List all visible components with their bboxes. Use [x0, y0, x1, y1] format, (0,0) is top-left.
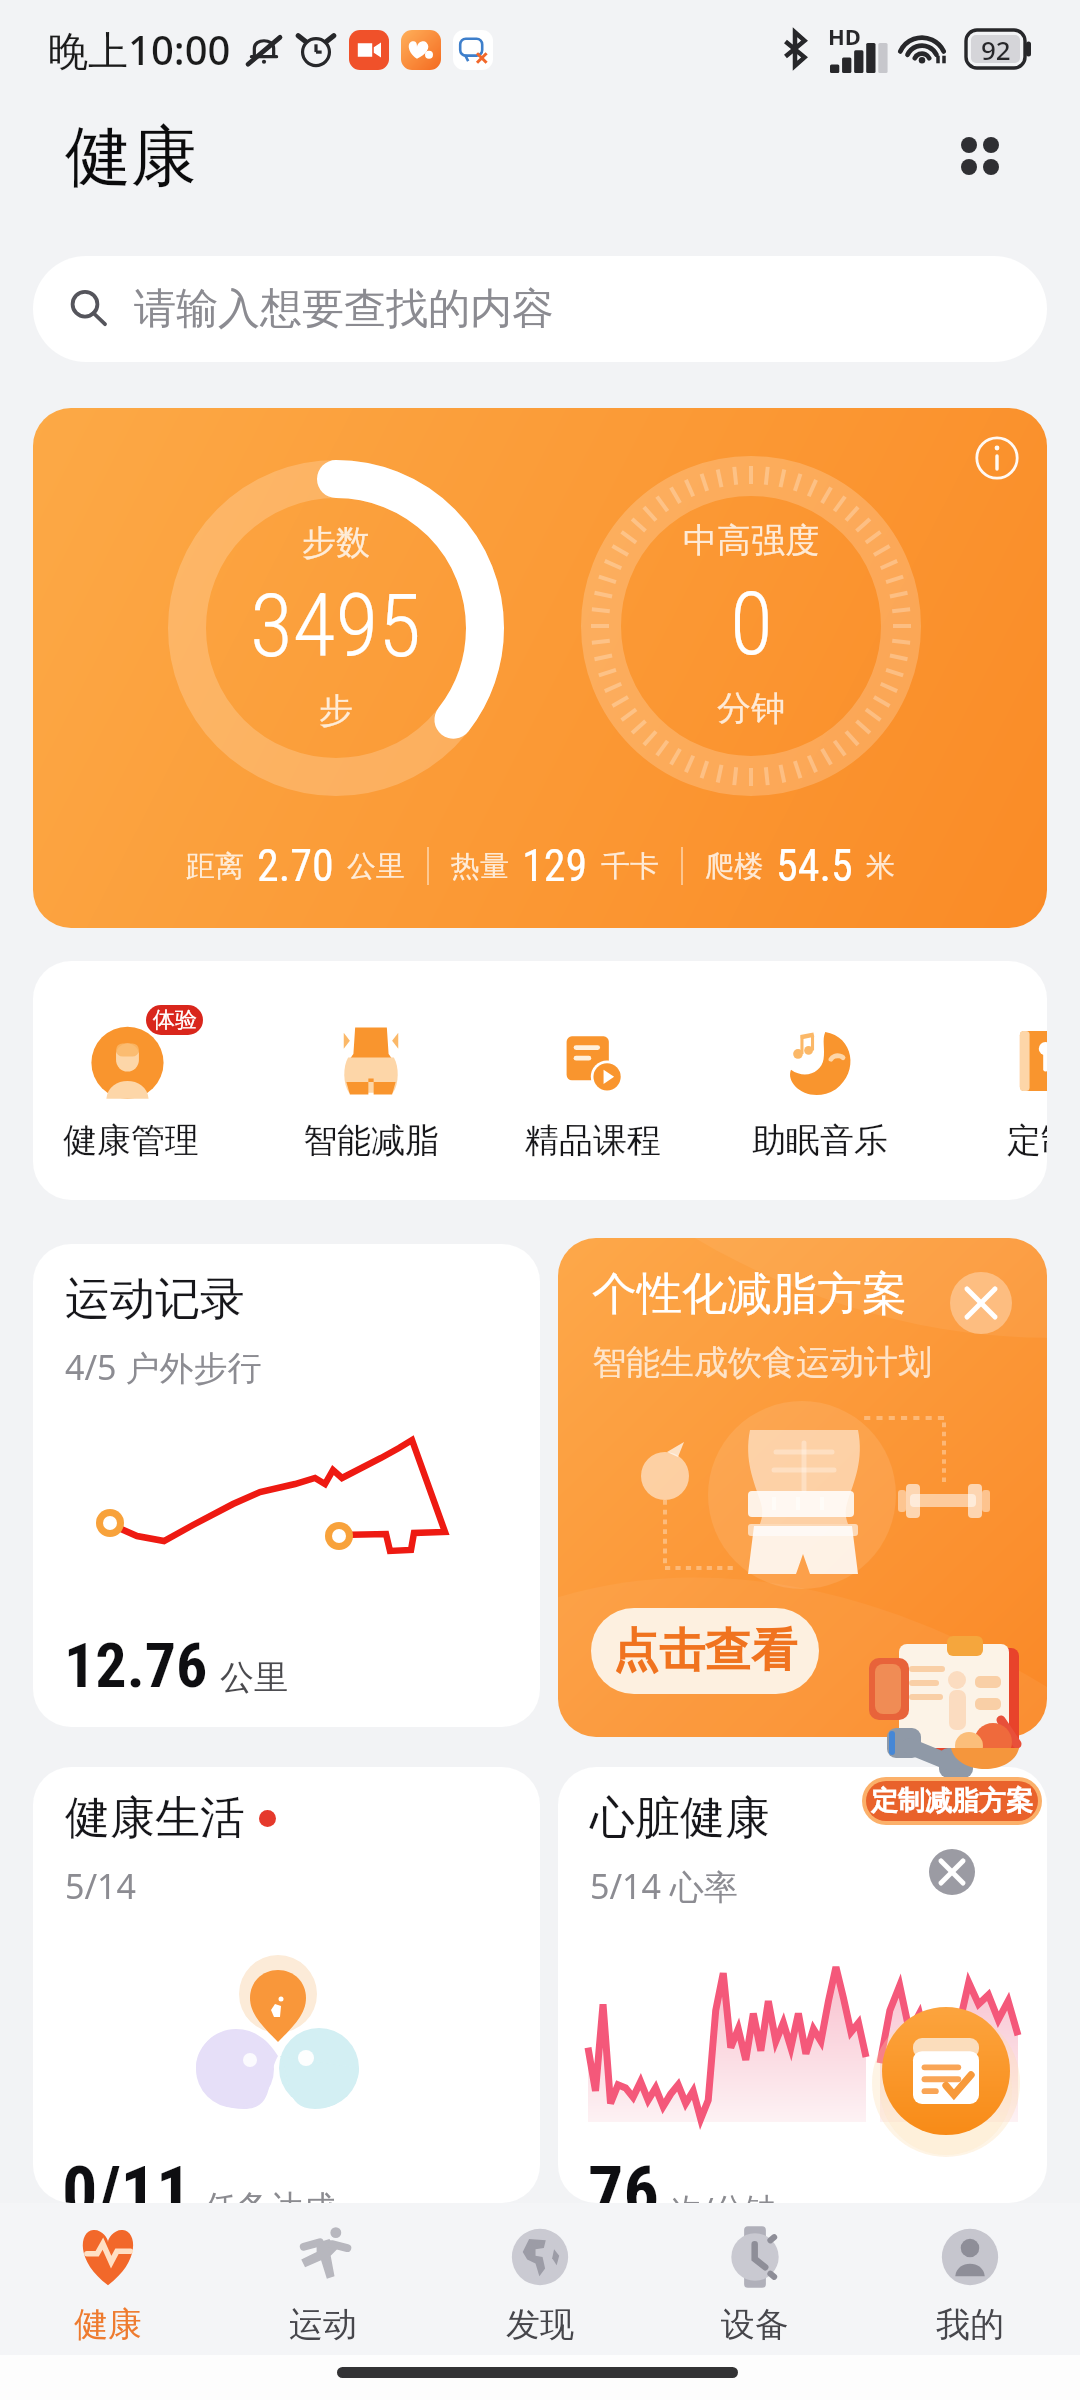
- staticText: 定制: [1007, 1119, 1047, 1162]
- staticText: 点击查看: [613, 1622, 797, 1680]
- staticText: 分钟: [717, 687, 785, 730]
- staticText: 4/5 户外步行: [65, 1344, 262, 1390]
- button[interactable]: Close: [950, 1272, 1012, 1334]
- button[interactable]: 体验: [33, 961, 231, 1200]
- button[interactable]: 心脏健康: [558, 1767, 1047, 2203]
- staticText: 2.70: [257, 840, 334, 892]
- button[interactable]: Health plan: [882, 2007, 1010, 2135]
- staticText: 129: [522, 840, 588, 892]
- button[interactable]: Info: [33, 408, 1047, 928]
- staticText: 千卡: [601, 848, 659, 885]
- staticText: 请输入想要查找的内容: [134, 283, 554, 336]
- staticText: 个性化减脂方案: [592, 1266, 907, 1323]
- button[interactable]: Close: [929, 1849, 975, 1895]
- staticText: 12.76: [64, 1629, 208, 1702]
- staticText: 3495: [250, 574, 422, 677]
- staticText: 健康生活: [65, 1790, 245, 1847]
- button[interactable]: 智能减脂: [271, 961, 471, 1200]
- staticText: 公里: [220, 1656, 288, 1699]
- button[interactable]: 我的: [880, 2203, 1060, 2355]
- staticText: 我的: [936, 2303, 1004, 2346]
- button[interactable]: More options: [940, 116, 1020, 196]
- staticText: 步: [319, 689, 353, 732]
- staticText: 体验: [153, 1006, 197, 1034]
- staticText: 步数: [302, 521, 370, 564]
- button[interactable]: 健康: [18, 2203, 198, 2355]
- staticText: 健康: [74, 2303, 142, 2346]
- staticText: 智能减脂: [303, 1119, 439, 1162]
- button[interactable]: 请输入想要查找的内容: [33, 256, 1047, 362]
- staticText: 智能生成饮食运动计划: [592, 1341, 932, 1384]
- button[interactable]: 定制减脂方案: [862, 1777, 1042, 1825]
- staticText: 健康管理: [63, 1119, 199, 1162]
- button[interactable]: Info: [969, 430, 1025, 486]
- staticText: 0: [730, 572, 773, 675]
- button[interactable]: 精品课程: [493, 961, 693, 1200]
- button[interactable]: 个性化减脂方案: [558, 1238, 1047, 1737]
- button[interactable]: 设备: [665, 2203, 845, 2355]
- button[interactable]: 运动: [233, 2203, 413, 2355]
- staticText: 次/分钟: [671, 2187, 776, 2203]
- staticText: 公里: [347, 848, 405, 885]
- staticText: 任务达成: [204, 2187, 336, 2203]
- staticText: 爬楼: [705, 848, 763, 885]
- staticText: 晚上10:00: [48, 22, 231, 77]
- staticText: 助眠音乐: [752, 1119, 888, 1162]
- staticText: 定制减脂方案: [871, 1784, 1033, 1818]
- staticText: 中高强度: [683, 519, 819, 562]
- staticText: 76: [588, 2151, 659, 2203]
- staticText: 心脏健康: [590, 1790, 770, 1847]
- staticText: 运动记录: [65, 1271, 245, 1328]
- button[interactable]: 健康生活: [33, 1767, 540, 2203]
- staticText: 米: [866, 848, 895, 885]
- staticText: HD: [828, 21, 861, 51]
- staticText: 0/11: [62, 2151, 192, 2203]
- staticText: 发现: [506, 2303, 574, 2346]
- button[interactable]: 助眠音乐: [720, 961, 920, 1200]
- staticText: 距离: [186, 848, 244, 885]
- staticText: 精品课程: [525, 1119, 661, 1162]
- staticText: 热量: [451, 848, 509, 885]
- staticText: 5/14: [65, 1863, 136, 1909]
- button[interactable]: 定制: [941, 961, 1047, 1200]
- button[interactable]: 点击查看: [591, 1608, 819, 1694]
- button[interactable]: 运动记录: [33, 1244, 540, 1727]
- staticText: 运动: [289, 2303, 357, 2346]
- staticText: 92: [981, 32, 1011, 67]
- staticText: 设备: [721, 2303, 789, 2346]
- button[interactable]: 发现: [450, 2203, 630, 2355]
- staticText: 健康: [65, 115, 197, 198]
- staticText: 5/14 心率: [590, 1863, 738, 1909]
- staticText: 54.5: [776, 840, 853, 892]
